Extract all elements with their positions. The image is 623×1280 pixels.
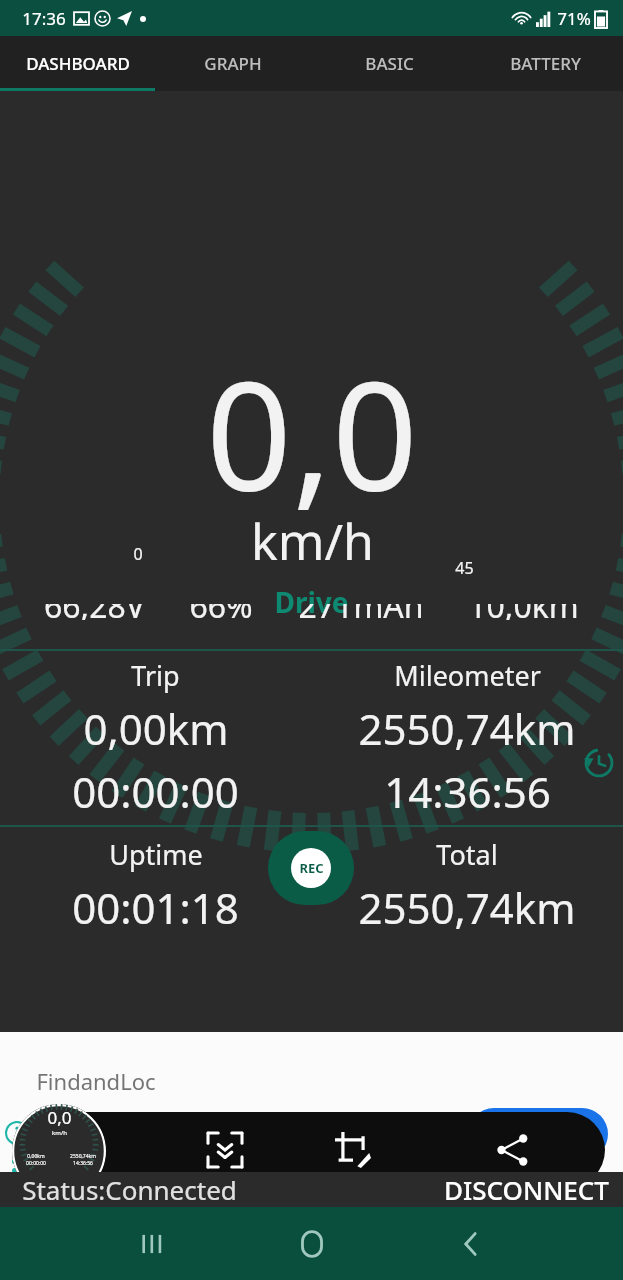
staticText: 0,0 — [47, 1106, 72, 1129]
button[interactable]: FindandLoc — [0, 1032, 623, 1172]
staticText: DISCONNECT — [444, 1172, 609, 1207]
staticText: Drive — [274, 583, 349, 621]
staticText: 271mAh — [298, 604, 424, 620]
staticText: Mileometer — [394, 657, 541, 694]
button[interactable]: Mileometer — [311, 657, 623, 820]
button[interactable]: Trip — [0, 657, 311, 820]
staticText: 00:00:00 — [26, 1160, 46, 1167]
staticText: km/h — [251, 507, 374, 575]
staticText: 66,28V — [44, 604, 145, 620]
button[interactable]: GRAPH — [155, 36, 311, 91]
staticText: 0 — [133, 543, 143, 565]
button[interactable]: Record — [268, 831, 354, 905]
staticText: GRAPH — [204, 52, 262, 75]
staticText: 14:36:56 — [384, 763, 551, 820]
staticText: BASIC — [365, 52, 414, 75]
button[interactable]: DISCONNECT — [444, 1172, 609, 1207]
button[interactable]: Headlight off — [116, 1036, 204, 1104]
staticText: Введите номер телефона — [36, 1102, 442, 1147]
staticText: 2550,74km — [358, 700, 576, 757]
button[interactable]: Share — [478, 1112, 548, 1188]
staticText: 0,0 — [206, 331, 418, 535]
staticText: Trip — [131, 657, 180, 694]
staticText: 71% — [557, 7, 591, 30]
staticText: 00:00:00 — [72, 763, 239, 820]
button[interactable]: Total — [311, 836, 623, 936]
staticText: 14:36:56 — [73, 1160, 93, 1167]
button[interactable]: BATTERY — [467, 36, 623, 91]
staticText: 2550,74km — [70, 1153, 96, 1160]
staticText: 00:01:18 — [72, 879, 239, 936]
staticText: 10,0km — [468, 604, 579, 620]
button[interactable]: Back — [441, 1214, 501, 1274]
staticText: FindandLoc — [36, 1066, 156, 1096]
button[interactable]: Crop and edit — [318, 1112, 388, 1188]
button[interactable]: ЕЩЁ — [468, 1108, 608, 1160]
button[interactable]: BASIC — [311, 36, 467, 91]
staticText: DASHBOARD — [26, 52, 130, 75]
staticText: BATTERY — [510, 52, 581, 75]
staticText: Total — [436, 836, 498, 873]
button[interactable]: Uptime — [0, 836, 311, 936]
staticText: 66% — [189, 604, 253, 620]
button[interactable]: Scroll capture — [190, 1112, 260, 1188]
button[interactable]: Recent apps — [122, 1214, 182, 1274]
staticText: REC — [299, 859, 324, 877]
button[interactable]: DASHBOARD — [0, 36, 155, 91]
button[interactable]: History — [582, 746, 616, 780]
staticText: 0,00km — [27, 1153, 45, 1160]
staticText: 17:36 — [22, 7, 66, 30]
staticText: km/h — [52, 1129, 67, 1137]
staticText: ЕЩЁ — [504, 1120, 552, 1150]
staticText: 2550,74km — [358, 879, 576, 936]
staticText: Status:Connected — [22, 1172, 237, 1207]
button[interactable]: Screenshot preview — [12, 1104, 106, 1198]
button[interactable]: Home — [282, 1214, 342, 1274]
staticText: 0,00km — [83, 700, 229, 757]
staticText: Uptime — [109, 836, 203, 873]
staticText: 45 — [455, 557, 474, 579]
